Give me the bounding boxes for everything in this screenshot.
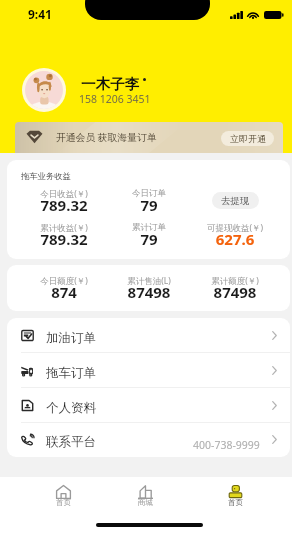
staticText: 累计售油(L) — [89, 275, 209, 287]
staticText: 今日额度(￥) — [7, 275, 124, 287]
button[interactable]: 立即开通 — [221, 131, 274, 146]
button[interactable]: 首页 — [211, 477, 259, 522]
button[interactable]: 加油订单 — [7, 318, 290, 353]
button[interactable]: 联系平台 — [7, 422, 290, 457]
staticText: 商城 — [138, 498, 153, 507]
staticText: 个人资料 — [46, 400, 96, 416]
button[interactable]: Profile avatar — [22, 68, 66, 112]
staticText: 今日订单 — [89, 188, 209, 199]
button[interactable]: 去提现 — [212, 192, 259, 209]
staticText: 79 — [89, 229, 209, 249]
staticText: 79 — [89, 195, 209, 215]
staticText: 累计额度(￥) — [175, 275, 290, 287]
staticText: 首页 — [228, 498, 243, 507]
staticText: 87498 — [175, 282, 290, 302]
staticText: 627.6 — [175, 229, 290, 249]
button[interactable]: 个人资料 — [7, 388, 290, 423]
staticText: 累计订单 — [89, 222, 209, 233]
staticText: 立即开通 — [230, 133, 266, 144]
staticText: 可提现收益(￥) — [175, 222, 290, 234]
staticText: 首页 — [56, 498, 71, 507]
button[interactable]: 开通会员 获取海量订单 — [15, 122, 283, 153]
staticText: 9:41 — [28, 6, 52, 22]
staticText: 789.32 — [7, 229, 124, 249]
staticText: 开通会员 获取海量订单 — [56, 131, 157, 144]
staticText: 158 1206 3451 — [79, 92, 151, 106]
staticText: 400-738-9999 — [193, 438, 260, 452]
staticText: 一木子李 — [81, 75, 139, 93]
button[interactable]: 拖车订单 — [7, 353, 290, 388]
button[interactable]: 商城 — [121, 477, 169, 522]
staticText: 87498 — [89, 282, 209, 302]
staticText: 加油订单 — [46, 330, 96, 346]
staticText: 拖车业务收益 — [21, 171, 71, 181]
staticText: 累计收益(￥) — [7, 222, 124, 234]
staticText: 联系平台 — [46, 434, 96, 450]
staticText: 今日收益(￥) — [7, 188, 124, 200]
button[interactable]: 首页 — [39, 477, 87, 522]
staticText: 去提现 — [221, 195, 250, 207]
staticText: 874 — [7, 282, 124, 302]
staticText: 拖车订单 — [46, 365, 96, 381]
staticText: 789.32 — [7, 195, 124, 215]
